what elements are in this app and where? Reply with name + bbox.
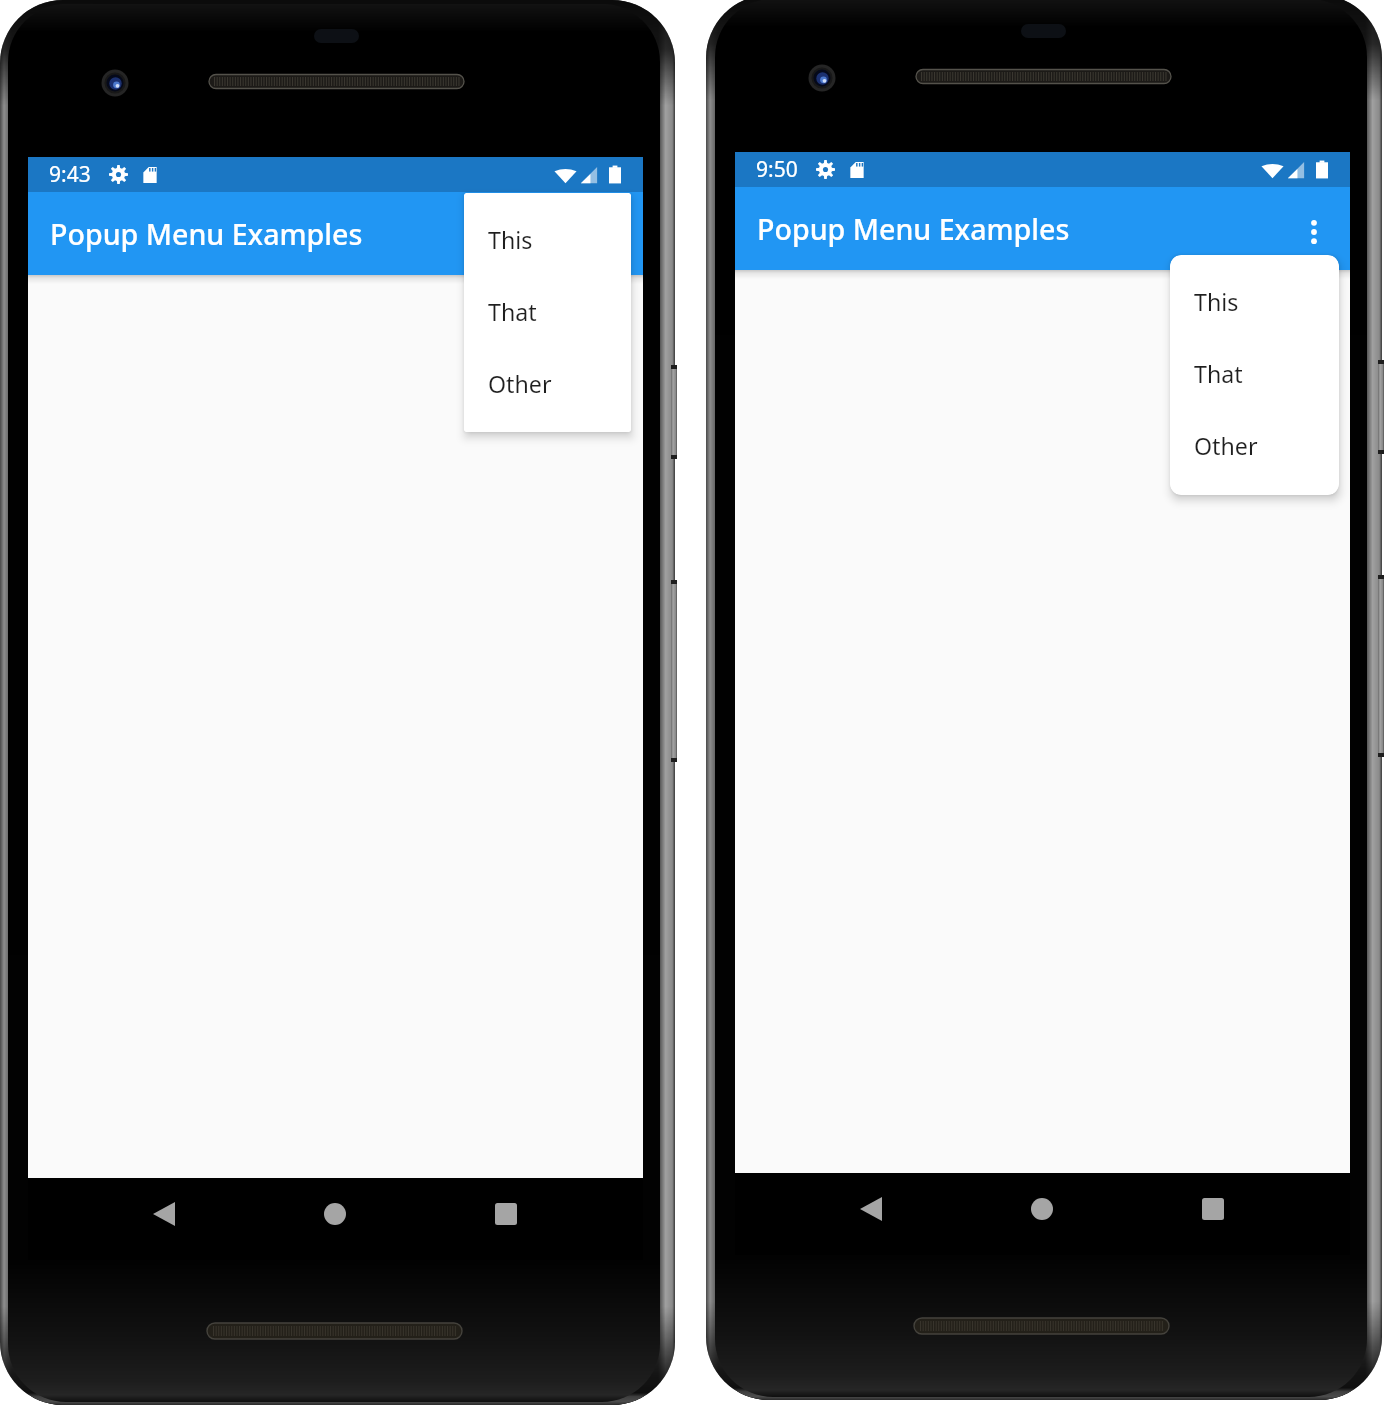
staticText: This <box>1194 286 1239 318</box>
staticText: Popup Menu Examples <box>757 209 1070 248</box>
button[interactable]: Recents <box>1189 1185 1237 1233</box>
button[interactable]: Home <box>1018 1185 1066 1233</box>
staticText: Popup Menu Examples <box>50 214 363 253</box>
button[interactable]: Home <box>311 1190 359 1238</box>
button[interactable]: This <box>1170 276 1339 348</box>
button[interactable]: Other <box>464 358 631 430</box>
staticText: This <box>488 224 533 256</box>
button[interactable]: This <box>464 214 631 286</box>
button[interactable]: That <box>464 286 631 358</box>
button[interactable]: Other <box>1170 420 1339 492</box>
button[interactable]: Back <box>140 1190 188 1238</box>
staticText: 9:50 <box>756 155 798 184</box>
button[interactable]: Back <box>847 1185 895 1233</box>
button[interactable]: That <box>1170 348 1339 420</box>
button[interactable]: Recents <box>482 1190 530 1238</box>
staticText: That <box>488 296 537 328</box>
button[interactable]: More options <box>1285 187 1345 270</box>
staticText: 9:43 <box>49 160 91 189</box>
staticText: Other <box>1194 430 1258 462</box>
staticText: That <box>1194 358 1243 390</box>
staticText: Other <box>488 368 552 400</box>
